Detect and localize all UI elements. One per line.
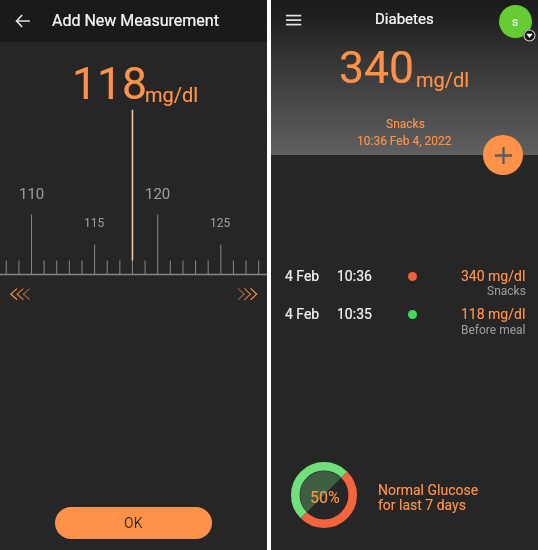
- button[interactable]: Menu: [276, 6, 308, 38]
- button[interactable]: 4 Feb: [271, 298, 538, 336]
- button[interactable]: Decrease value: [4, 284, 34, 304]
- staticText: 4 Feb: [285, 268, 320, 284]
- staticText: for last 7 days: [378, 497, 466, 513]
- staticText: Normal Glucose: [378, 482, 479, 498]
- staticText: Before meal: [461, 323, 526, 336]
- staticText: Snacks: [386, 117, 425, 131]
- staticText: 115: [84, 216, 105, 230]
- staticText: 340 mg/dl: [461, 268, 526, 284]
- button[interactable]: Profile: [499, 5, 532, 38]
- button[interactable]: Increase value: [232, 284, 262, 304]
- button[interactable]: OK: [55, 507, 212, 539]
- staticText: mg/dl: [145, 83, 199, 106]
- staticText: 10:36: [337, 268, 372, 284]
- button[interactable]: Add measurement: [483, 135, 523, 175]
- staticText: Add New Measurement: [52, 11, 219, 30]
- button[interactable]: Back: [6, 8, 34, 36]
- staticText: 118 mg/dl: [461, 306, 526, 322]
- staticText: 340: [339, 42, 415, 94]
- staticText: 50%: [310, 488, 340, 507]
- staticText: Snacks: [487, 284, 526, 298]
- staticText: 4 Feb: [285, 306, 320, 322]
- staticText: Diabetes: [375, 10, 434, 28]
- staticText: 125: [210, 216, 231, 230]
- staticText: OK: [124, 515, 143, 531]
- staticText: 10:35: [337, 306, 372, 322]
- staticText: 118: [72, 58, 148, 110]
- button[interactable]: 4 Feb: [271, 260, 538, 298]
- staticText: 110: [19, 185, 45, 203]
- staticText: mg/dl: [416, 68, 470, 91]
- staticText: 10:36 Feb 4, 2022: [357, 134, 452, 148]
- staticText: 120: [145, 185, 171, 203]
- staticText: s: [512, 15, 519, 29]
